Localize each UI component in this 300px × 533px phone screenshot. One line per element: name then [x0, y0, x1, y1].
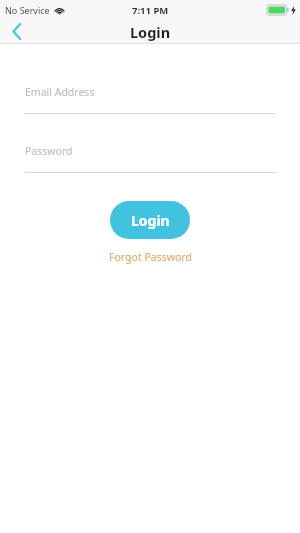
staticText: Login	[130, 22, 171, 42]
staticText: Email Address	[25, 85, 95, 99]
staticText: Password	[25, 144, 73, 158]
button[interactable]: Email Address	[25, 79, 275, 114]
staticText: 7:11 PM	[132, 4, 169, 17]
button[interactable]: Back	[0, 20, 34, 43]
button[interactable]: Login	[110, 201, 190, 239]
staticText: Forgot Password	[109, 250, 192, 264]
staticText: No Service	[5, 4, 50, 16]
button[interactable]: Forgot Password	[103, 248, 198, 266]
button[interactable]: Password	[25, 138, 275, 173]
staticText: Login	[131, 211, 170, 230]
